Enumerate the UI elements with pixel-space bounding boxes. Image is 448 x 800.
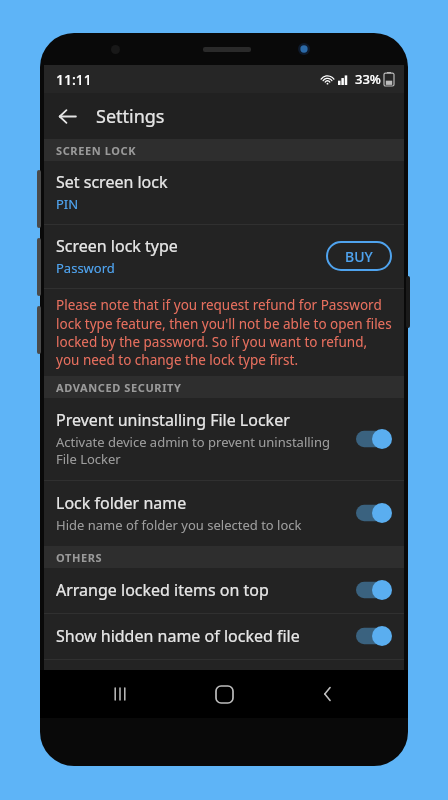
button[interactable]: Lock folder name (44, 481, 404, 546)
button[interactable]: Prevent uninstalling File Locker (44, 398, 404, 480)
staticText: Show ads to support developer (56, 695, 246, 706)
staticText: Arrange locked items on top (56, 579, 269, 601)
button[interactable]: Arrange locked items on top (44, 568, 404, 613)
button[interactable]: Show hidden name of locked file (44, 614, 404, 659)
staticText: ADVANCED SECURITY (56, 380, 182, 395)
staticText: Lock folder name (56, 492, 187, 514)
button[interactable]: BUY (326, 241, 392, 271)
staticText: Settings (96, 104, 165, 129)
staticText: SCREEN LOCK (56, 143, 137, 158)
staticText: 33% (355, 70, 381, 88)
staticText: Hide name of folder you selected to lock (56, 516, 302, 534)
staticText: PIN (56, 195, 79, 213)
staticText: Please note that if you request refund f… (56, 296, 392, 368)
button[interactable]: Back (44, 93, 90, 139)
staticText: Show ads (56, 671, 128, 693)
staticText: OTHERS (56, 550, 103, 565)
staticText: Password (56, 259, 115, 277)
staticText: Activate device admin to prevent uninsta… (56, 433, 346, 468)
button[interactable]: Show ads (44, 660, 404, 718)
button[interactable]: Back (304, 670, 352, 718)
staticText: 11:11 (56, 70, 92, 89)
staticText: BUY (345, 247, 373, 266)
staticText: Prevent uninstalling File Locker (56, 409, 290, 431)
button[interactable]: Set screen lock (44, 161, 404, 224)
button[interactable]: Screen lock type (44, 225, 404, 288)
staticText: Screen lock type (56, 235, 178, 257)
staticText: Show hidden name of locked file (56, 625, 300, 647)
button[interactable]: Home (200, 670, 248, 718)
button[interactable]: Recents (96, 670, 144, 718)
staticText: Set screen lock (56, 171, 168, 193)
